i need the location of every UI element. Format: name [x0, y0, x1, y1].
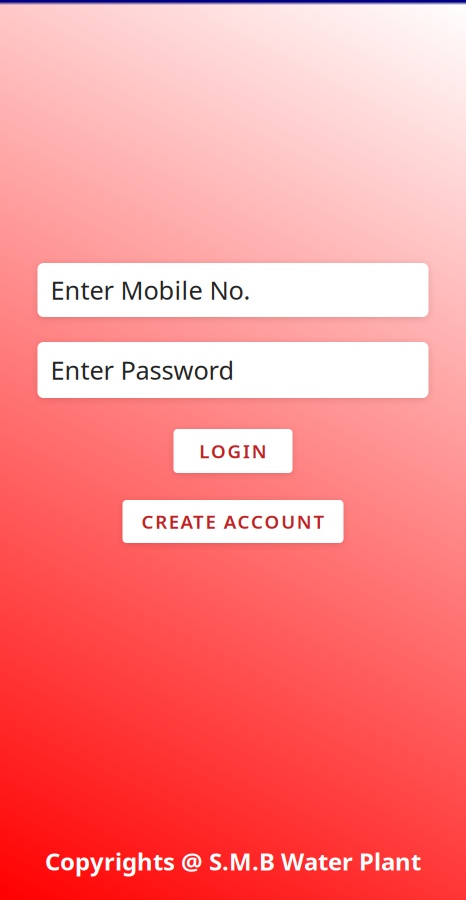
- button[interactable]: CREATE ACCOUNT: [122, 500, 343, 543]
- button[interactable]: Enter Mobile No.: [37, 263, 428, 317]
- staticText: Enter Mobile No.: [50, 273, 250, 307]
- staticText: LOGIN: [199, 439, 267, 463]
- staticText: Copyrights @ S.M.B Water Plant: [45, 845, 421, 877]
- button[interactable]: Enter Password: [37, 342, 428, 398]
- staticText: Enter Password: [50, 353, 234, 387]
- staticText: CREATE ACCOUNT: [142, 509, 324, 534]
- button[interactable]: LOGIN: [173, 429, 292, 473]
